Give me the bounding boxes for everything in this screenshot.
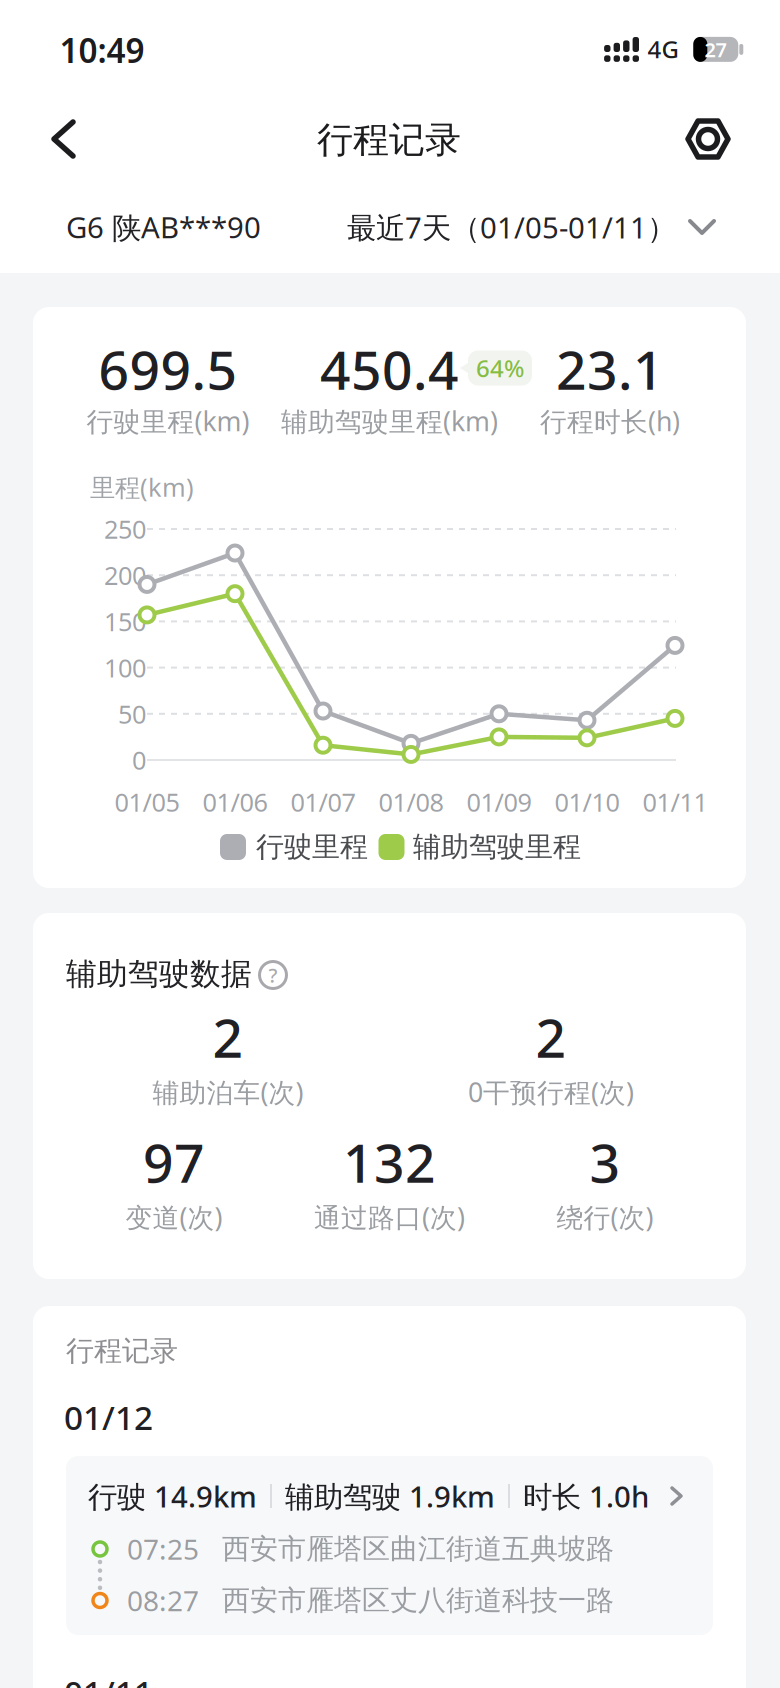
button[interactable]: 行驶 14.9km bbox=[66, 1456, 713, 1635]
staticText: ? bbox=[268, 962, 277, 988]
staticText: 时长 1.0h bbox=[523, 1476, 649, 1515]
staticText: 里程(km) bbox=[90, 470, 194, 504]
staticText: 450.4 bbox=[320, 334, 459, 404]
staticText: 辅助驾驶 1.9km bbox=[285, 1476, 495, 1515]
staticText: 01/12 bbox=[64, 1395, 153, 1439]
staticText: 01/11 bbox=[642, 785, 707, 819]
staticText: 辅助驾驶数据 bbox=[66, 955, 252, 993]
staticText: 01/08 bbox=[378, 785, 443, 819]
staticText: 23.1 bbox=[556, 334, 664, 404]
staticText: 行驶里程(km) bbox=[86, 403, 249, 439]
staticText: 250 bbox=[104, 512, 146, 546]
staticText: 2 bbox=[535, 1002, 566, 1072]
staticText: 行程记录 bbox=[317, 118, 461, 162]
staticText: 01/07 bbox=[290, 785, 355, 819]
staticText: 10:49 bbox=[59, 28, 144, 72]
button[interactable]: 返回 bbox=[19, 113, 107, 165]
button[interactable]: 帮助 bbox=[253, 955, 293, 995]
staticText: 西安市雁塔区曲江街道五典坡路 bbox=[222, 1532, 614, 1566]
staticText: 200 bbox=[104, 558, 146, 592]
staticText: 699.5 bbox=[98, 334, 237, 404]
staticText: 08:27 bbox=[127, 1582, 199, 1619]
button[interactable]: 最近7天（01/05-01/11） bbox=[347, 207, 715, 246]
staticText: 01/06 bbox=[202, 785, 267, 819]
staticText: 4G bbox=[647, 33, 678, 65]
staticText: 97 bbox=[143, 1127, 205, 1197]
staticText: 行程记录 bbox=[66, 1334, 178, 1368]
staticText: 100 bbox=[104, 651, 146, 684]
staticText: 27 bbox=[704, 36, 726, 63]
staticText: 0 bbox=[132, 743, 146, 777]
staticText: 行驶里程 bbox=[256, 830, 368, 864]
staticText: 变道(次) bbox=[125, 1199, 222, 1235]
staticText: 3 bbox=[589, 1127, 620, 1197]
staticText: 绕行(次) bbox=[556, 1199, 653, 1235]
staticText: 01/05 bbox=[114, 785, 179, 819]
staticText: 150 bbox=[104, 605, 146, 638]
staticText: 01/09 bbox=[466, 785, 531, 819]
staticText: 通过路口(次) bbox=[314, 1199, 465, 1235]
button[interactable]: G6 陕AB***90 bbox=[66, 207, 346, 246]
staticText: 01/10 bbox=[554, 785, 619, 819]
staticText: 07:25 bbox=[127, 1530, 199, 1568]
staticText: 辅助泊车(次) bbox=[152, 1074, 303, 1110]
staticText: 0干预行程(次) bbox=[468, 1074, 634, 1110]
staticText: 辅助驾驶里程(km) bbox=[281, 403, 498, 439]
staticText: 辅助驾驶里程 bbox=[413, 830, 581, 864]
staticText: 50 bbox=[118, 697, 146, 731]
staticText: 64% bbox=[476, 352, 524, 384]
button[interactable]: 设置 bbox=[674, 113, 742, 165]
staticText: 132 bbox=[343, 1127, 436, 1197]
staticText: 2 bbox=[212, 1002, 243, 1072]
staticText: 行驶 14.9km bbox=[88, 1476, 257, 1515]
staticText: 西安市雁塔区丈八街道科技一路 bbox=[222, 1583, 614, 1618]
staticText: G6 陕AB***90 bbox=[66, 207, 261, 246]
staticText: 最近7天（01/05-01/11） bbox=[347, 207, 676, 246]
staticText: 行程时长(h) bbox=[540, 403, 680, 439]
staticText: 01/11 bbox=[64, 1670, 153, 1688]
